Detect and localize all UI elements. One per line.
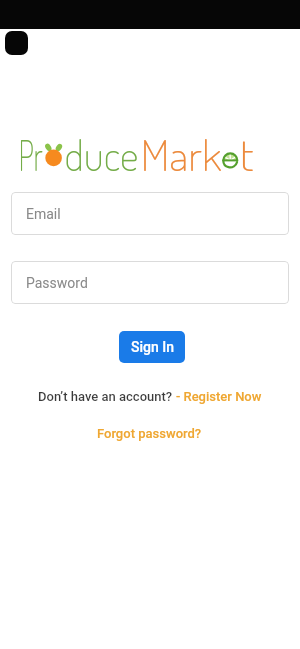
button[interactable]: Sign In	[119, 331, 185, 363]
button[interactable]: Email	[11, 192, 289, 235]
staticText: Password	[26, 275, 88, 291]
staticText: Email	[26, 206, 61, 222]
button[interactable]: Forgot password?	[97, 426, 202, 441]
staticText: Sign In	[131, 339, 174, 355]
button[interactable]: Password	[11, 261, 289, 304]
staticText: Don’t have an account?	[38, 389, 176, 404]
button[interactable]: - Register Now	[176, 389, 262, 404]
